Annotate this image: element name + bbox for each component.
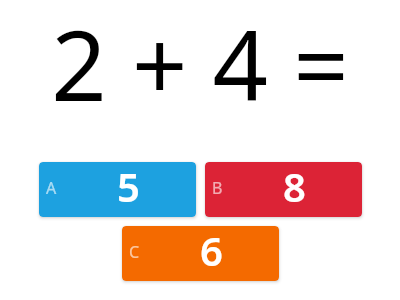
button[interactable]: A <box>39 162 196 217</box>
button[interactable]: B <box>205 162 362 217</box>
button[interactable]: C <box>122 226 279 281</box>
staticText: 8 <box>283 162 306 213</box>
staticText: B <box>212 177 223 199</box>
staticText: C <box>129 241 140 263</box>
staticText: 2 + 4 = <box>51 0 349 129</box>
staticText: 5 <box>117 162 140 213</box>
staticText: 6 <box>200 226 223 277</box>
staticText: A <box>46 177 57 199</box>
